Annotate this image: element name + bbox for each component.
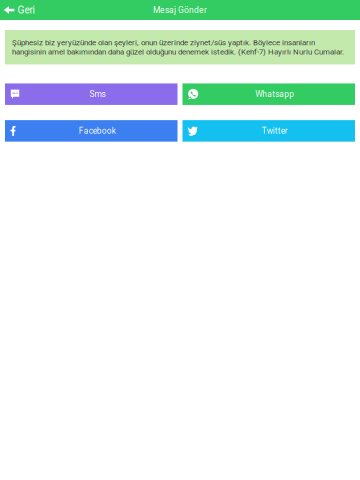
staticText: Whatsapp xyxy=(255,89,294,99)
staticText: Şüphesiz biz yeryüzünde olan şeyleri, on… xyxy=(12,38,344,56)
staticText: Mesaj Gönder xyxy=(153,5,207,15)
button[interactable]: Facebook xyxy=(5,120,177,142)
staticText: Geri xyxy=(17,4,34,16)
staticText: Sms xyxy=(89,89,105,99)
button[interactable]: Twitter xyxy=(182,120,355,142)
button[interactable]: Geri xyxy=(0,0,41,20)
button[interactable]: Whatsapp xyxy=(182,83,355,105)
staticText: Facebook xyxy=(79,126,116,136)
staticText: Twitter xyxy=(262,126,288,136)
button[interactable]: Sms xyxy=(5,83,177,105)
